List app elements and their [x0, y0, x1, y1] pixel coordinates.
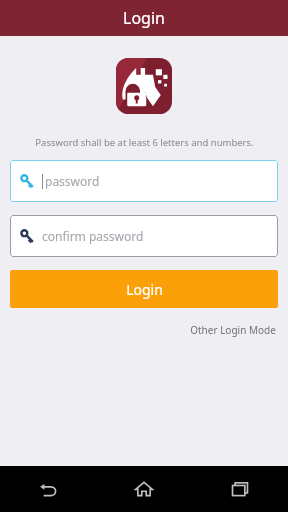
staticText: Password shall be at least 6 letters and… — [35, 136, 254, 149]
button[interactable]: Other Login Mode — [188, 320, 278, 340]
button[interactable]: confirm password — [10, 215, 278, 257]
button[interactable]: Back — [0, 466, 96, 512]
button[interactable]: Login — [10, 270, 278, 308]
button[interactable]: Recent apps — [192, 466, 288, 512]
staticText: Login — [123, 7, 165, 29]
staticText: Other Login Mode — [190, 323, 276, 337]
staticText: password — [45, 173, 100, 189]
staticText: confirm password — [42, 228, 144, 244]
button[interactable]: password — [10, 160, 278, 202]
button[interactable]: Home — [96, 466, 192, 512]
staticText: Login — [126, 280, 163, 299]
